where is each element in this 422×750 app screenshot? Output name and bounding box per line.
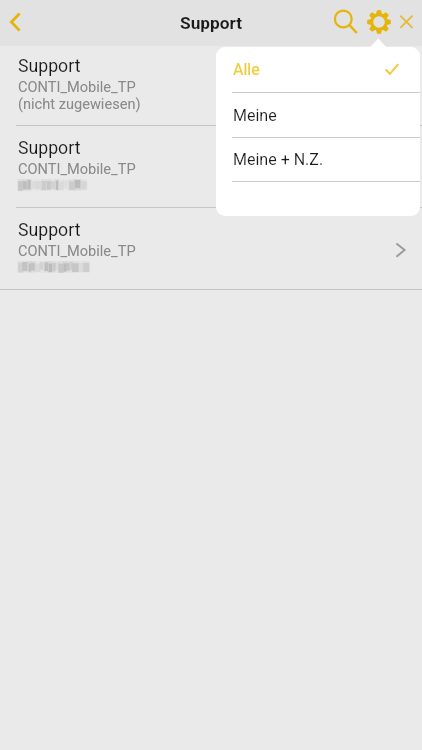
button[interactable]: Search	[330, 0, 358, 45]
other: Open	[392, 243, 408, 259]
staticText: Support	[180, 13, 243, 33]
staticText: Meine + N.Z.	[233, 150, 324, 169]
staticText: CONTI_Mobile_TP	[18, 242, 136, 259]
button[interactable]: Back	[0, 0, 44, 45]
staticText: Alle	[233, 60, 260, 79]
staticText: CONTI_Mobile_TP	[18, 160, 136, 177]
button[interactable]: Alle	[216, 47, 420, 92]
staticText: Meine	[233, 106, 277, 125]
button[interactable]: Settings	[365, 0, 393, 45]
staticText: CONTI_Mobile_TP	[18, 78, 136, 95]
button[interactable]: Meine	[216, 93, 420, 137]
staticText: (nicht zugewiesen)	[18, 95, 141, 112]
staticText: Support	[18, 56, 81, 77]
button[interactable]: Support	[0, 126, 422, 208]
staticText: Support	[18, 138, 81, 159]
button[interactable]: Support	[0, 208, 422, 290]
button[interactable]: Close	[394, 0, 420, 45]
button[interactable]: Meine + N.Z.	[216, 138, 420, 181]
button[interactable]: Support	[0, 44, 422, 126]
staticText: Support	[18, 220, 81, 241]
